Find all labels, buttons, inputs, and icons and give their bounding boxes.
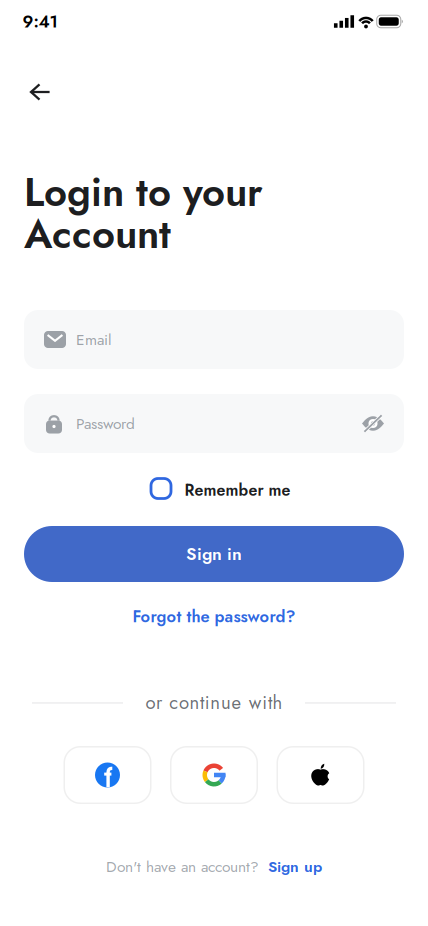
staticText: Remember me (184, 479, 290, 502)
staticText: Sign up (268, 855, 322, 878)
button[interactable]: Remember me (149, 477, 299, 500)
button[interactable]: Continue with Google (170, 746, 258, 804)
staticText: Account (24, 205, 171, 263)
staticText: Email (76, 328, 112, 351)
staticText: 9:41 (22, 9, 57, 34)
staticText: Sign in (186, 541, 242, 567)
staticText: Don't have an account? (106, 855, 259, 878)
button[interactable]: Continue with Facebook (63, 746, 151, 804)
staticText: or continue with (145, 689, 282, 716)
button[interactable]: Email (24, 310, 404, 369)
staticText: Password (76, 412, 135, 435)
staticText: Forgot the password? (132, 605, 295, 628)
button[interactable]: Forgot the password? (132, 605, 295, 628)
button[interactable]: Password (24, 394, 404, 453)
button[interactable]: Sign in (24, 526, 404, 582)
staticText: Login to your (24, 163, 263, 221)
button[interactable]: Continue with Apple (276, 746, 364, 804)
button[interactable]: Back (18, 70, 62, 114)
button[interactable]: Sign up (268, 855, 322, 878)
